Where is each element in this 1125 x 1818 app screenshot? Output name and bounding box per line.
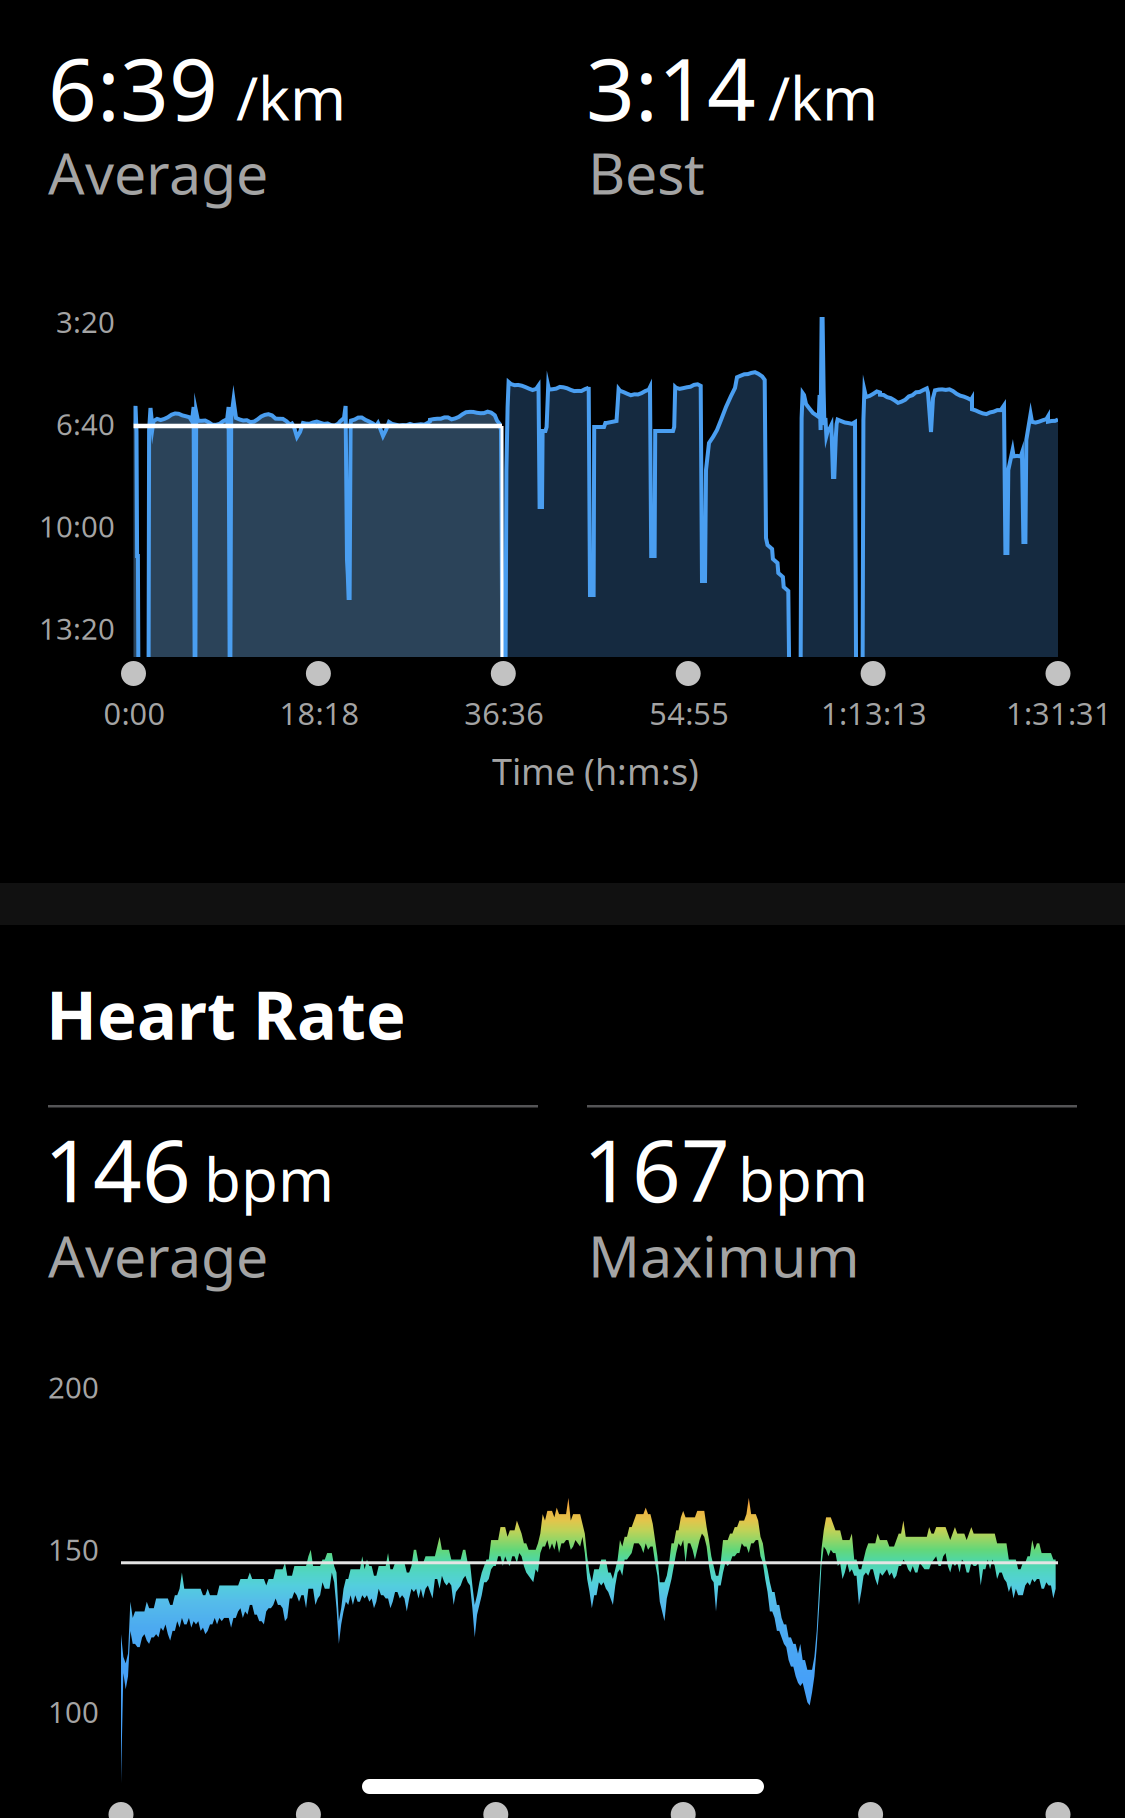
staticText: 36:36 (464, 693, 544, 733)
staticText: Heart Rate (46, 969, 406, 1058)
staticText: 18:18 (279, 693, 359, 733)
staticText: 1:31:31 (1006, 693, 1112, 733)
staticText: Average (48, 1217, 268, 1293)
staticText: /km (236, 57, 346, 137)
staticText: /km (768, 57, 878, 137)
staticText: Maximum (588, 1217, 860, 1293)
staticText: 146 (44, 1112, 191, 1226)
staticText: 13:20 (39, 609, 115, 648)
staticText: 10:00 (39, 507, 115, 546)
staticText: 0:00 (103, 693, 165, 733)
staticText: Time (h:m:s) (492, 747, 699, 795)
staticText: 1:13:13 (821, 693, 927, 733)
staticText: 200 (48, 1368, 99, 1407)
staticText: 3:14 (586, 31, 756, 144)
staticText: 6:40 (56, 404, 115, 443)
staticText: 54:55 (649, 693, 729, 733)
staticText: Best (588, 134, 705, 210)
staticText: bpm (738, 1139, 868, 1218)
staticText: 6:39 (48, 31, 218, 144)
staticText: bpm (204, 1139, 334, 1218)
staticText: 3:20 (56, 302, 115, 341)
staticText: Average (48, 134, 268, 210)
staticText: 150 (48, 1530, 99, 1569)
staticText: 167 (583, 1112, 730, 1226)
staticText: 100 (48, 1692, 99, 1731)
